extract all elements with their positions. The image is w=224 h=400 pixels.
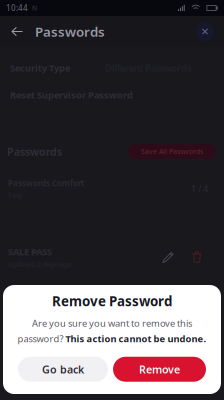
staticText: Passwords <box>7 144 62 159</box>
button[interactable]: Go back <box>18 357 108 382</box>
button[interactable]: Close <box>196 22 214 40</box>
staticText: Updated 2 days ago <box>8 260 71 269</box>
staticText: SALE PASS <box>8 245 52 258</box>
button[interactable]: Back <box>6 16 28 47</box>
button[interactable]: Save All Passwords <box>128 144 216 159</box>
button[interactable]: Edit <box>157 248 179 266</box>
staticText: N <box>32 4 37 12</box>
staticText: Security Type <box>10 62 70 74</box>
staticText: 1 / 4 <box>191 182 208 195</box>
staticText: Save All Passwords <box>141 147 203 156</box>
staticText: Are you sure you want to remove this <box>32 317 192 329</box>
staticText: This action cannot be undone. <box>65 332 206 345</box>
staticText: Passwords Comfort <box>8 178 84 188</box>
staticText: Different Passwords <box>105 62 191 74</box>
staticText: Go back <box>42 362 84 376</box>
staticText: Remove <box>139 362 180 376</box>
staticText: Easy <box>8 190 22 199</box>
staticText: Remove Password <box>52 292 172 310</box>
staticText: Passwords <box>35 23 105 40</box>
button[interactable]: Delete <box>186 248 208 266</box>
staticText: Reset Supervisor Password <box>10 89 133 101</box>
staticText: 10:44 <box>6 3 28 13</box>
staticText: password? <box>17 332 65 345</box>
button[interactable]: Remove <box>113 357 206 382</box>
